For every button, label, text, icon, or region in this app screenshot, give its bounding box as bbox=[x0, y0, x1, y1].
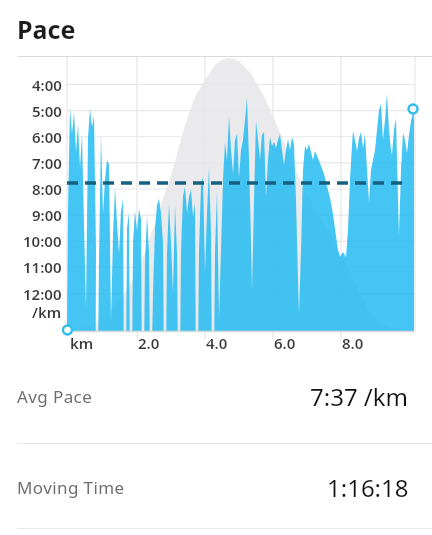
staticText: Moving Time bbox=[17, 476, 125, 499]
staticText: Pace bbox=[17, 12, 76, 46]
staticText: 8:00 bbox=[32, 179, 62, 199]
staticText: /km bbox=[32, 302, 62, 322]
staticText: 5:00 bbox=[32, 101, 62, 121]
button[interactable]: Avg Pace bbox=[0, 368, 432, 424]
staticText: 6:00 bbox=[32, 127, 62, 147]
staticText: km bbox=[70, 333, 94, 353]
staticText: 7:00 bbox=[32, 153, 62, 173]
staticText: 8.0 bbox=[342, 333, 364, 353]
staticText: 12:00 bbox=[23, 284, 62, 304]
staticText: 9:00 bbox=[32, 205, 62, 225]
staticText: 7:37 /km bbox=[310, 380, 409, 413]
staticText: 4:00 bbox=[32, 75, 62, 95]
staticText: Avg Pace bbox=[17, 385, 93, 408]
staticText: 4.0 bbox=[206, 333, 228, 353]
button[interactable]: Moving Time bbox=[0, 459, 432, 515]
staticText: 10:00 bbox=[23, 231, 62, 251]
staticText: 1:16:18 bbox=[327, 471, 409, 504]
staticText: 6.0 bbox=[274, 333, 296, 353]
staticText: 2.0 bbox=[138, 333, 160, 353]
staticText: 11:00 bbox=[23, 257, 62, 277]
